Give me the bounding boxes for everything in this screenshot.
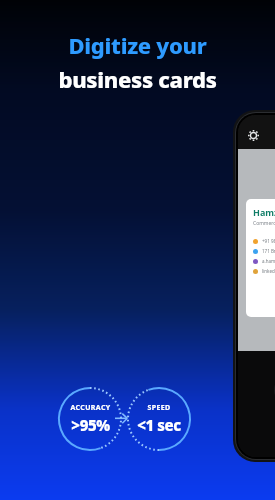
button[interactable]: Hamza Aziz xyxy=(246,199,275,317)
staticText: Digitize your xyxy=(68,30,207,60)
staticText: Commercial Director xyxy=(253,220,275,227)
staticText: linkedin.com/hamza xyxy=(262,268,275,274)
staticText: a.hamza@mail.com xyxy=(262,258,275,264)
staticText: +91 98200 11221 xyxy=(262,238,275,244)
button[interactable]: Settings xyxy=(245,127,261,143)
button[interactable]: ACCURACY xyxy=(57,386,123,452)
staticText: >95% xyxy=(71,415,110,435)
staticText: <1 sec xyxy=(137,415,181,435)
staticText: ACCURACY xyxy=(70,403,111,413)
staticText: SPEED xyxy=(147,403,171,413)
button[interactable]: SPEED xyxy=(126,386,192,452)
staticText: business cards xyxy=(58,64,217,94)
button[interactable]: Scan card xyxy=(274,375,275,405)
staticText: Hamza Aziz xyxy=(253,206,275,218)
staticText: 171 Brigade Road xyxy=(262,248,275,254)
